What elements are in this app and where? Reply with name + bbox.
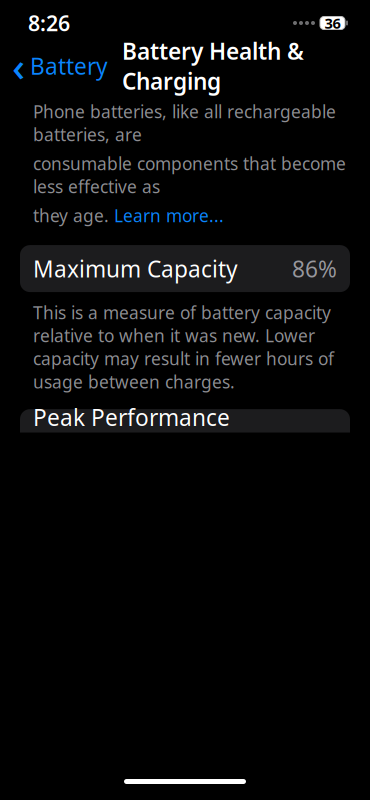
button[interactable]: Maximum Capacity xyxy=(20,245,350,292)
staticText: 36 xyxy=(324,13,340,33)
button[interactable]: Peak Performance Capability xyxy=(20,409,350,455)
staticText: consumable components that become less e… xyxy=(33,152,346,198)
staticText: Maximum Capacity xyxy=(33,253,238,284)
staticText: 8:26 xyxy=(28,9,70,37)
button[interactable]: ‹ xyxy=(0,46,114,86)
staticText: Peak Performance Capability xyxy=(33,402,230,462)
staticText: Learn more... xyxy=(114,204,224,227)
staticText: This is a measure of battery capacity re… xyxy=(33,301,334,393)
staticText: ‹ xyxy=(12,39,25,92)
staticText: 86% xyxy=(292,253,337,284)
button[interactable]: Learn more... xyxy=(114,204,224,227)
staticText: Battery Health & Charging xyxy=(122,36,304,96)
staticText: Battery xyxy=(30,51,108,81)
staticText: they age. xyxy=(33,204,114,227)
staticText: Phone batteries, like all rechargeable b… xyxy=(33,100,336,146)
